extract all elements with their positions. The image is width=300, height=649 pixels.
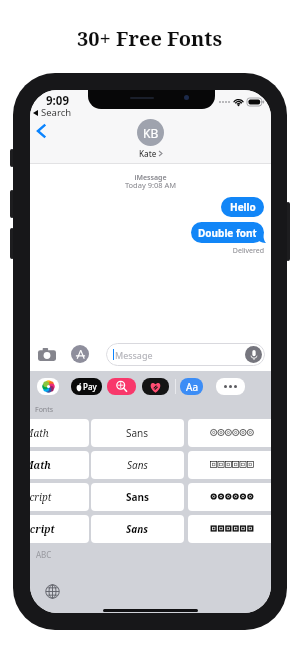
button[interactable]: Back	[31, 121, 51, 141]
button[interactable]: Camera	[37, 346, 57, 362]
button[interactable]: Hello	[221, 197, 264, 217]
staticText: Sans	[126, 426, 149, 440]
staticText: 30+ Free Fonts	[77, 25, 223, 52]
button[interactable]	[30, 419, 89, 447]
staticText: Sans	[127, 458, 148, 472]
staticText: Fonts	[35, 405, 54, 415]
button[interactable]: Photos	[37, 378, 59, 395]
button[interactable]: Audio message	[245, 346, 262, 363]
button[interactable]	[30, 515, 89, 543]
staticText: iMessage	[30, 173, 271, 183]
staticText: Delivered	[30, 246, 264, 256]
button[interactable]: Sans	[91, 483, 184, 511]
button[interactable]	[30, 483, 89, 511]
staticText: Double font	[198, 226, 257, 240]
button[interactable]: More apps	[216, 378, 245, 395]
staticText: Aa	[186, 380, 198, 394]
button[interactable]: Message	[106, 343, 265, 366]
button[interactable]	[188, 451, 271, 479]
staticText: Sans	[126, 522, 149, 536]
button[interactable]	[188, 483, 271, 511]
staticText: Math	[30, 458, 51, 472]
staticText: KB	[143, 125, 159, 141]
staticText: Math	[30, 426, 49, 440]
button[interactable]: Sans	[91, 451, 184, 479]
staticText: Kate	[139, 148, 157, 159]
button[interactable]: Double font	[191, 222, 264, 243]
button[interactable]: Fonts	[180, 378, 203, 395]
staticText: Sans	[126, 490, 150, 504]
staticText: Today 9:08 AM	[30, 180, 271, 190]
button[interactable]: Apple Pay	[71, 378, 102, 395]
staticText: 9:09	[46, 93, 69, 109]
staticText: Pay	[83, 381, 97, 392]
staticText: Message	[115, 349, 153, 361]
staticText: Search	[41, 106, 72, 119]
button[interactable]: KB	[30, 119, 271, 159]
button[interactable]	[30, 451, 89, 479]
staticText: Script	[30, 490, 52, 504]
button[interactable]	[188, 419, 271, 447]
staticText: Script	[30, 522, 55, 536]
staticText: Hello	[230, 200, 256, 214]
button[interactable]: Sans	[91, 515, 184, 543]
button[interactable]: Images	[107, 378, 136, 395]
staticText: ABC	[36, 549, 52, 560]
button[interactable]: Change keyboard	[45, 584, 60, 599]
button[interactable]: Sans	[91, 419, 184, 447]
button[interactable]	[188, 515, 271, 543]
button[interactable]: Digital Touch	[142, 378, 169, 395]
button[interactable]: App Store	[71, 345, 89, 363]
